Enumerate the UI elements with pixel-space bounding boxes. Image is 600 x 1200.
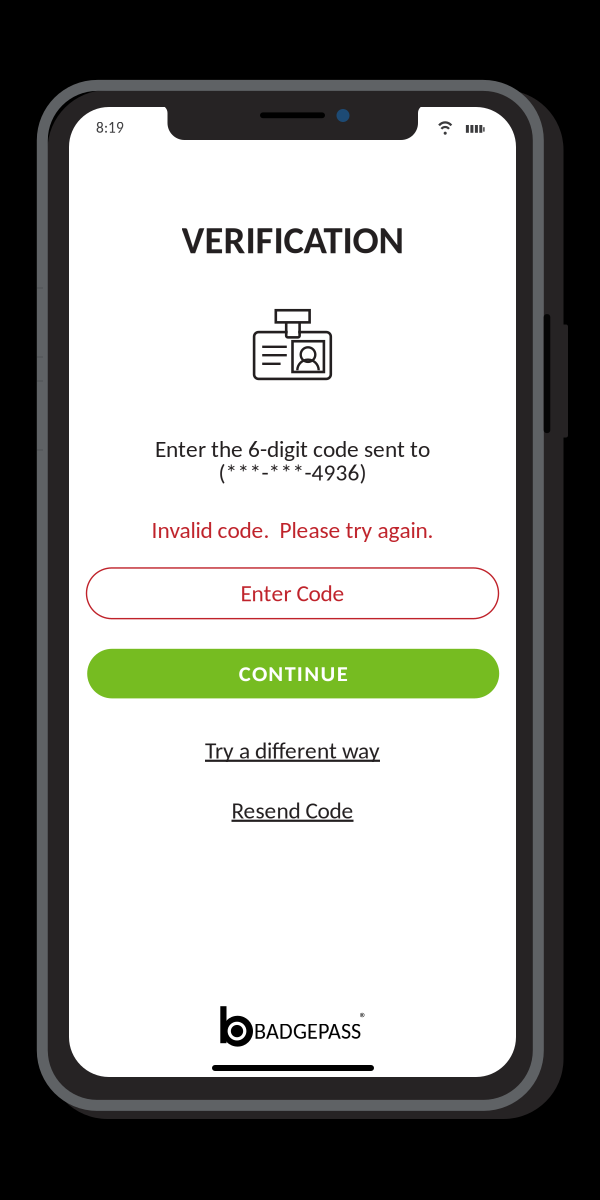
staticText: T bbox=[284, 660, 295, 687]
staticText: VERIFICATION bbox=[181, 216, 403, 264]
button[interactable]: C bbox=[87, 649, 499, 698]
staticText: C bbox=[239, 660, 251, 687]
staticText: Enter Code bbox=[240, 579, 344, 608]
staticText: Try a different way bbox=[205, 736, 380, 765]
staticText: N bbox=[268, 660, 283, 687]
staticText: BADGEPASS bbox=[254, 1018, 361, 1045]
staticText: U bbox=[320, 660, 335, 687]
staticText: I bbox=[297, 660, 303, 687]
staticText: (***-***-4936) bbox=[218, 458, 366, 487]
staticText: 8:19 bbox=[96, 118, 124, 137]
button[interactable]: Try a different way bbox=[205, 736, 380, 765]
staticText: Invalid code. Please try again. bbox=[151, 516, 433, 544]
staticText: ® bbox=[359, 1008, 366, 1026]
button[interactable]: Resend Code bbox=[231, 796, 353, 825]
staticText: N bbox=[304, 660, 319, 687]
staticText: Enter the 6-digit code sent to bbox=[155, 435, 430, 463]
button[interactable]: Enter Code bbox=[86, 568, 498, 619]
staticText: O bbox=[252, 660, 267, 687]
staticText: Resend Code bbox=[231, 796, 353, 825]
staticText: E bbox=[337, 660, 348, 687]
